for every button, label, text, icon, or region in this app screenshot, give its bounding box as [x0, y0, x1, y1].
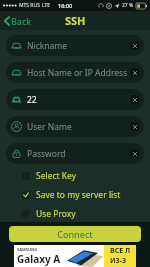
button[interactable]: Use Proxy: [0, 206, 150, 222]
staticText: Back: [11, 15, 32, 27]
button[interactable]: Clear Host Name or IP Address: [130, 68, 139, 77]
staticText: Select Key: [36, 170, 77, 182]
button[interactable]: Host Name or IP Address: [6, 62, 144, 83]
button[interactable]: Clear Nickname: [130, 41, 139, 50]
button[interactable]: Clear Port: [130, 95, 139, 104]
staticText: MTS RUS: [19, 2, 40, 9]
button[interactable]: Clear Password: [130, 149, 139, 158]
button[interactable]: Password: [6, 143, 144, 164]
staticText: SSH: [65, 13, 86, 28]
button[interactable]: Nickname: [6, 35, 144, 56]
staticText: SAMSUNG: [17, 247, 38, 252]
button[interactable]: Connect: [9, 226, 141, 242]
button[interactable]: Select Key: [0, 168, 150, 184]
staticText: Nickname: [27, 40, 68, 52]
staticText: Connect: [57, 228, 93, 240]
button[interactable]: Advertisement Samsung Galaxy A: [14, 245, 136, 267]
staticText: Save to my server list: [36, 189, 121, 201]
button[interactable]: Clear User Name: [130, 122, 139, 131]
staticText: Galaxy A: [17, 252, 61, 266]
staticText: ИЗ-З: [110, 256, 127, 266]
staticText: ВСЕ Л: [110, 246, 131, 256]
staticText: 22: [27, 94, 37, 106]
staticText: 16:00: [58, 2, 73, 9]
staticText: User Name: [27, 121, 72, 133]
staticText: LTE: [42, 2, 51, 9]
staticText: Password: [27, 148, 66, 160]
button[interactable]: User Name: [6, 116, 144, 137]
staticText: 27 %: [122, 2, 134, 9]
staticText: Host Name or IP Address: [27, 67, 128, 79]
button[interactable]: 22: [6, 89, 144, 110]
button[interactable]: Save to my server list: [0, 187, 150, 203]
staticText: Use Proxy: [36, 208, 76, 220]
button[interactable]: Back: [0, 12, 38, 30]
